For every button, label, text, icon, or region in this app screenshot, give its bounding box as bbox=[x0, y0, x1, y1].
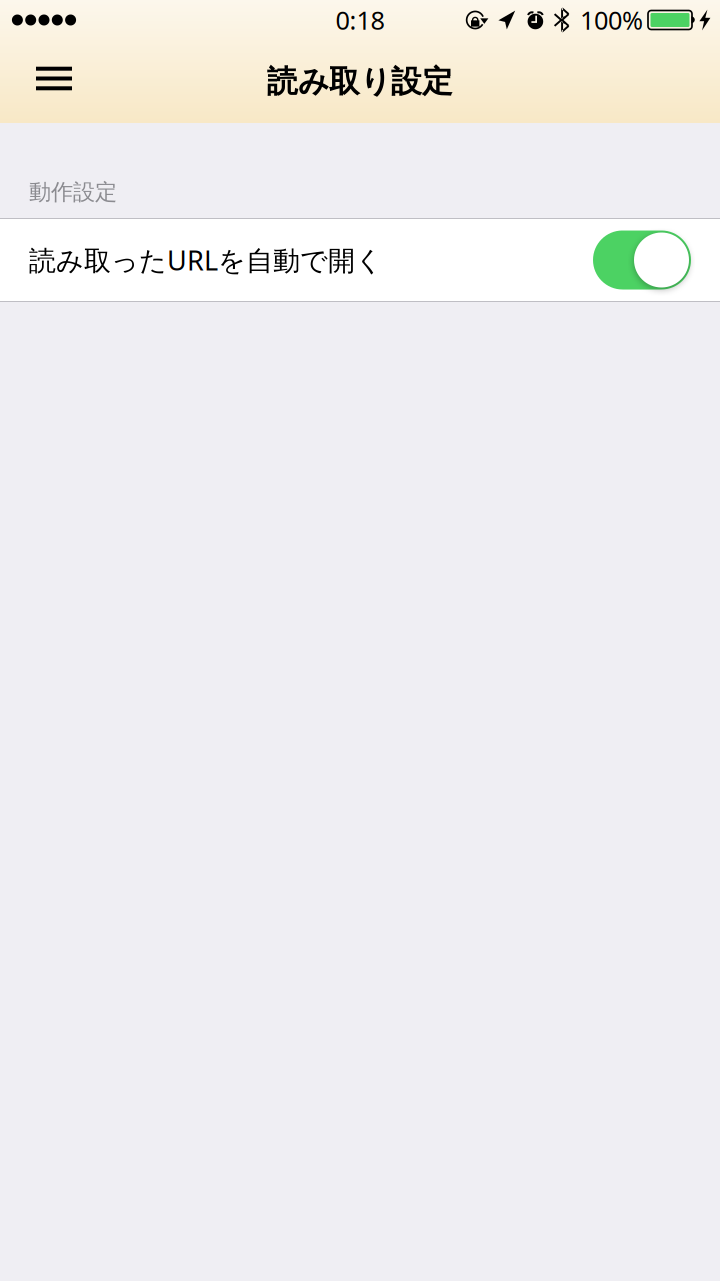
staticText: 0:18 bbox=[335, 3, 384, 37]
staticText: 100% bbox=[580, 3, 643, 37]
staticText: 読み取ったURLを自動で開く bbox=[29, 242, 383, 278]
staticText: 動作設定 bbox=[29, 178, 117, 206]
staticText: 読み取り設定 bbox=[267, 63, 453, 100]
button[interactable]: 読み取ったURLを自動で開く bbox=[0, 219, 720, 301]
button[interactable]: メニュー bbox=[0, 40, 90, 123]
